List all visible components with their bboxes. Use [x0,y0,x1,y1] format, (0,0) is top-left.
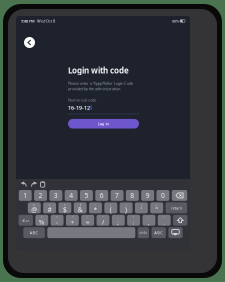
staticText: 3 [54,191,58,200]
button[interactable]: Redo [31,182,37,187]
staticText: ¥ [64,203,66,207]
button[interactable]: Delete [172,190,187,201]
staticText: Numerical code [68,97,96,102]
button[interactable]: 3 [49,190,62,201]
button[interactable]: { [135,202,148,213]
staticText: € [33,203,35,207]
staticText: \ [72,215,73,219]
button[interactable]: ABC [23,227,45,238]
staticText: £ [49,203,51,207]
staticText: Login with code [68,65,129,76]
button[interactable]: § [74,202,87,213]
staticText: 4 [69,191,73,200]
button[interactable]: 4 [65,190,78,201]
button[interactable]: ? [158,215,171,226]
staticText: * [93,205,97,214]
staticText: #+= [22,218,29,223]
button[interactable]: £ [43,202,56,213]
staticText: { [141,203,142,207]
button[interactable]: 9 [141,190,154,201]
staticText: : [133,217,135,226]
button[interactable]: … [112,215,125,226]
staticText: @ [31,205,37,214]
button[interactable]: Shift [173,215,187,226]
staticText: ' [140,205,142,214]
button[interactable]: < [35,215,48,226]
staticText: # [48,205,52,214]
staticText: 0 [161,191,165,200]
staticText: ABC [30,230,39,235]
button[interactable]: Back [23,36,36,49]
button[interactable]: ] [120,202,132,213]
staticText: + [70,217,74,226]
button[interactable]: ! [142,215,155,226]
staticText: 1 [23,191,27,200]
staticText: , [148,217,150,226]
staticText: ] [126,203,127,207]
staticText: ^ [94,203,96,207]
button[interactable]: undo [138,227,149,238]
button[interactable]: ¥ [58,202,71,213]
staticText: ~ [102,215,104,219]
button[interactable]: Log in [68,119,139,128]
staticText: undo [139,231,147,234]
staticText: = [86,217,90,226]
staticText: ? [164,215,165,219]
staticText: 7 [115,191,119,200]
staticText: < [41,215,43,219]
staticText: $ [63,205,67,214]
staticText: - [56,217,58,226]
staticText: . [163,217,165,226]
button[interactable]: ABC [151,227,166,238]
staticText: 9:48 PM [21,18,35,24]
button[interactable]: #+= [18,215,33,226]
button[interactable]: 2 [34,190,47,201]
staticText: ; [117,217,119,226]
button[interactable]: 6 [95,190,108,201]
staticText: " [155,205,158,214]
button[interactable]: Paste [40,182,45,187]
button[interactable]: \ [66,215,79,226]
staticText: … [117,215,119,219]
button[interactable]: ^ [89,202,102,213]
staticText: § [80,203,81,207]
button[interactable] [47,227,135,238]
button[interactable]: Undo [21,182,27,187]
staticText: return [171,205,182,210]
button[interactable]: 5 [80,190,93,201]
staticText: ( [110,205,112,214]
staticText: ) [125,205,127,214]
staticText: 5 [84,191,88,200]
staticText: Log in [97,121,109,126]
staticText: • [133,215,134,219]
button[interactable]: } [150,202,163,213]
button[interactable]: ~ [96,215,109,226]
button[interactable]: 1 [19,190,32,201]
button[interactable]: > [51,215,63,226]
button[interactable]: 7 [111,190,123,201]
staticText: 48% [172,18,179,24]
button[interactable]: € [28,202,41,213]
staticText: > [56,215,58,219]
staticText: 8 [130,191,134,200]
button[interactable]: 8 [126,190,139,201]
staticText: & [78,205,83,214]
staticText: [ [110,203,111,207]
button[interactable]: [ [104,202,117,213]
button[interactable]: return [166,202,187,213]
button[interactable]: • [127,215,140,226]
staticText: 2 [38,191,42,200]
staticText: 16-19-12 [68,104,90,111]
button[interactable]: 0 [156,190,169,201]
staticText: % [39,217,45,226]
staticText: 6 [100,191,104,200]
staticText: ! [148,215,149,219]
staticText: / [102,217,104,226]
button[interactable]: | [81,215,94,226]
staticText: ABC [154,230,163,235]
staticText: 9 [146,191,150,200]
staticText: Wed Oct 8 [35,18,55,24]
staticText: } [156,203,157,207]
button[interactable]: Hide keyboard [168,227,183,238]
